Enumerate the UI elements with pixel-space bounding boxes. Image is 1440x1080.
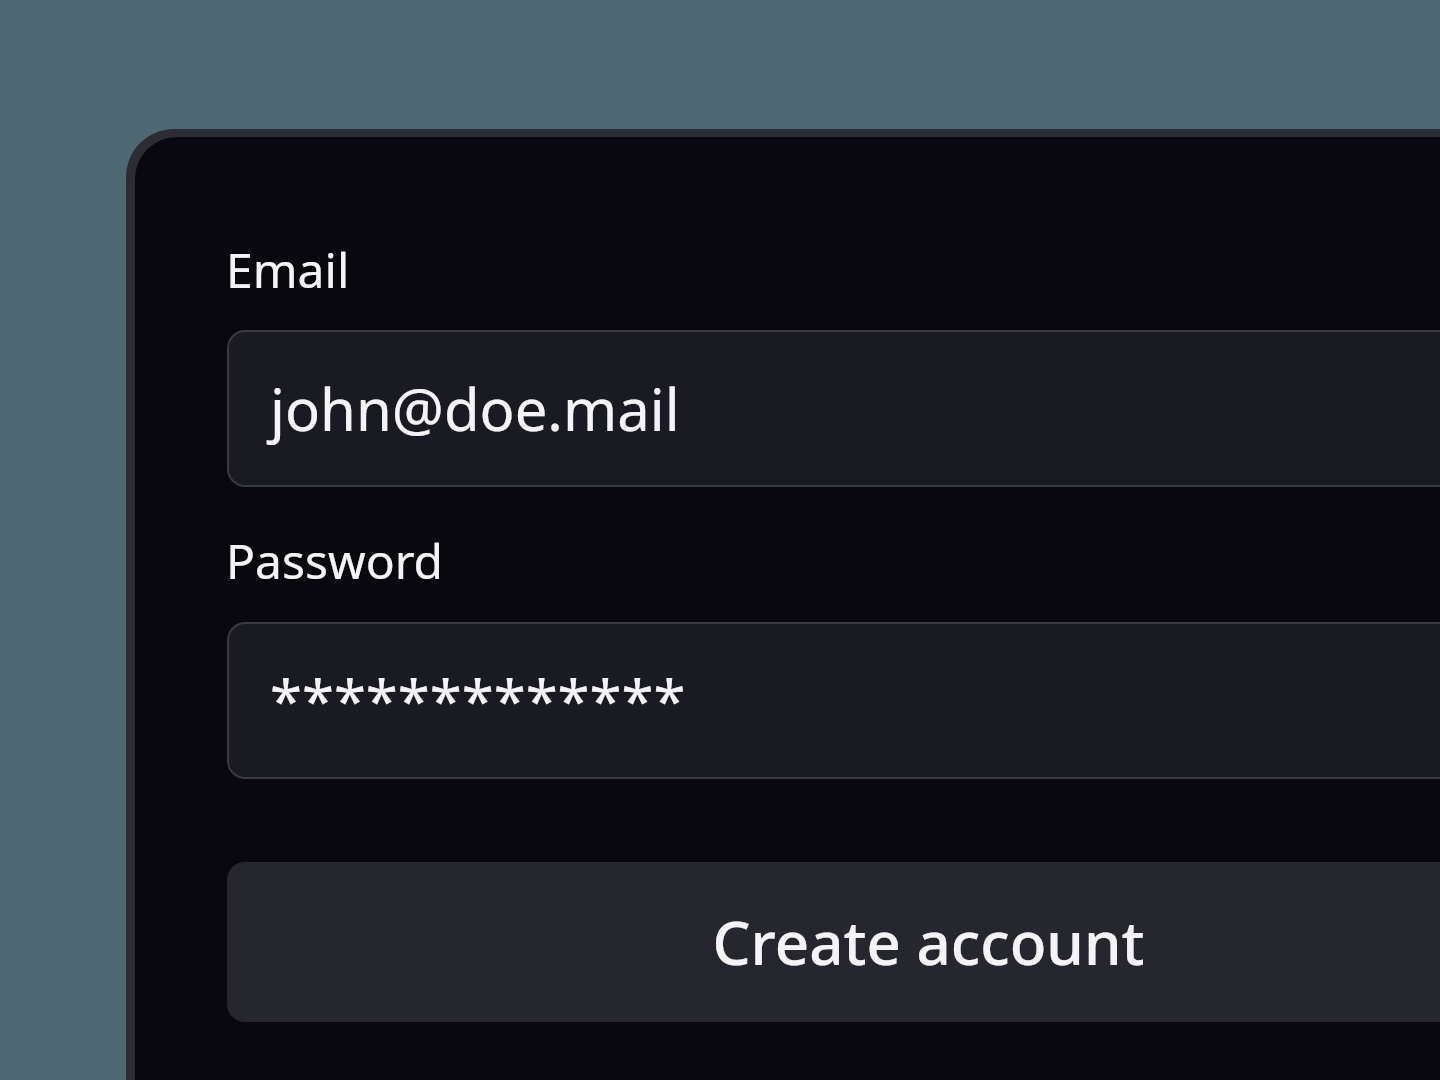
- staticText: *************: [270, 661, 686, 740]
- staticText: Password: [226, 528, 444, 593]
- button[interactable]: *************: [227, 622, 1440, 779]
- staticText: john@doe.mail: [270, 369, 680, 448]
- staticText: Create account: [712, 901, 1145, 983]
- staticText: Email: [226, 237, 350, 302]
- button[interactable]: Create account: [227, 862, 1440, 1022]
- button[interactable]: john@doe.mail: [227, 330, 1440, 487]
